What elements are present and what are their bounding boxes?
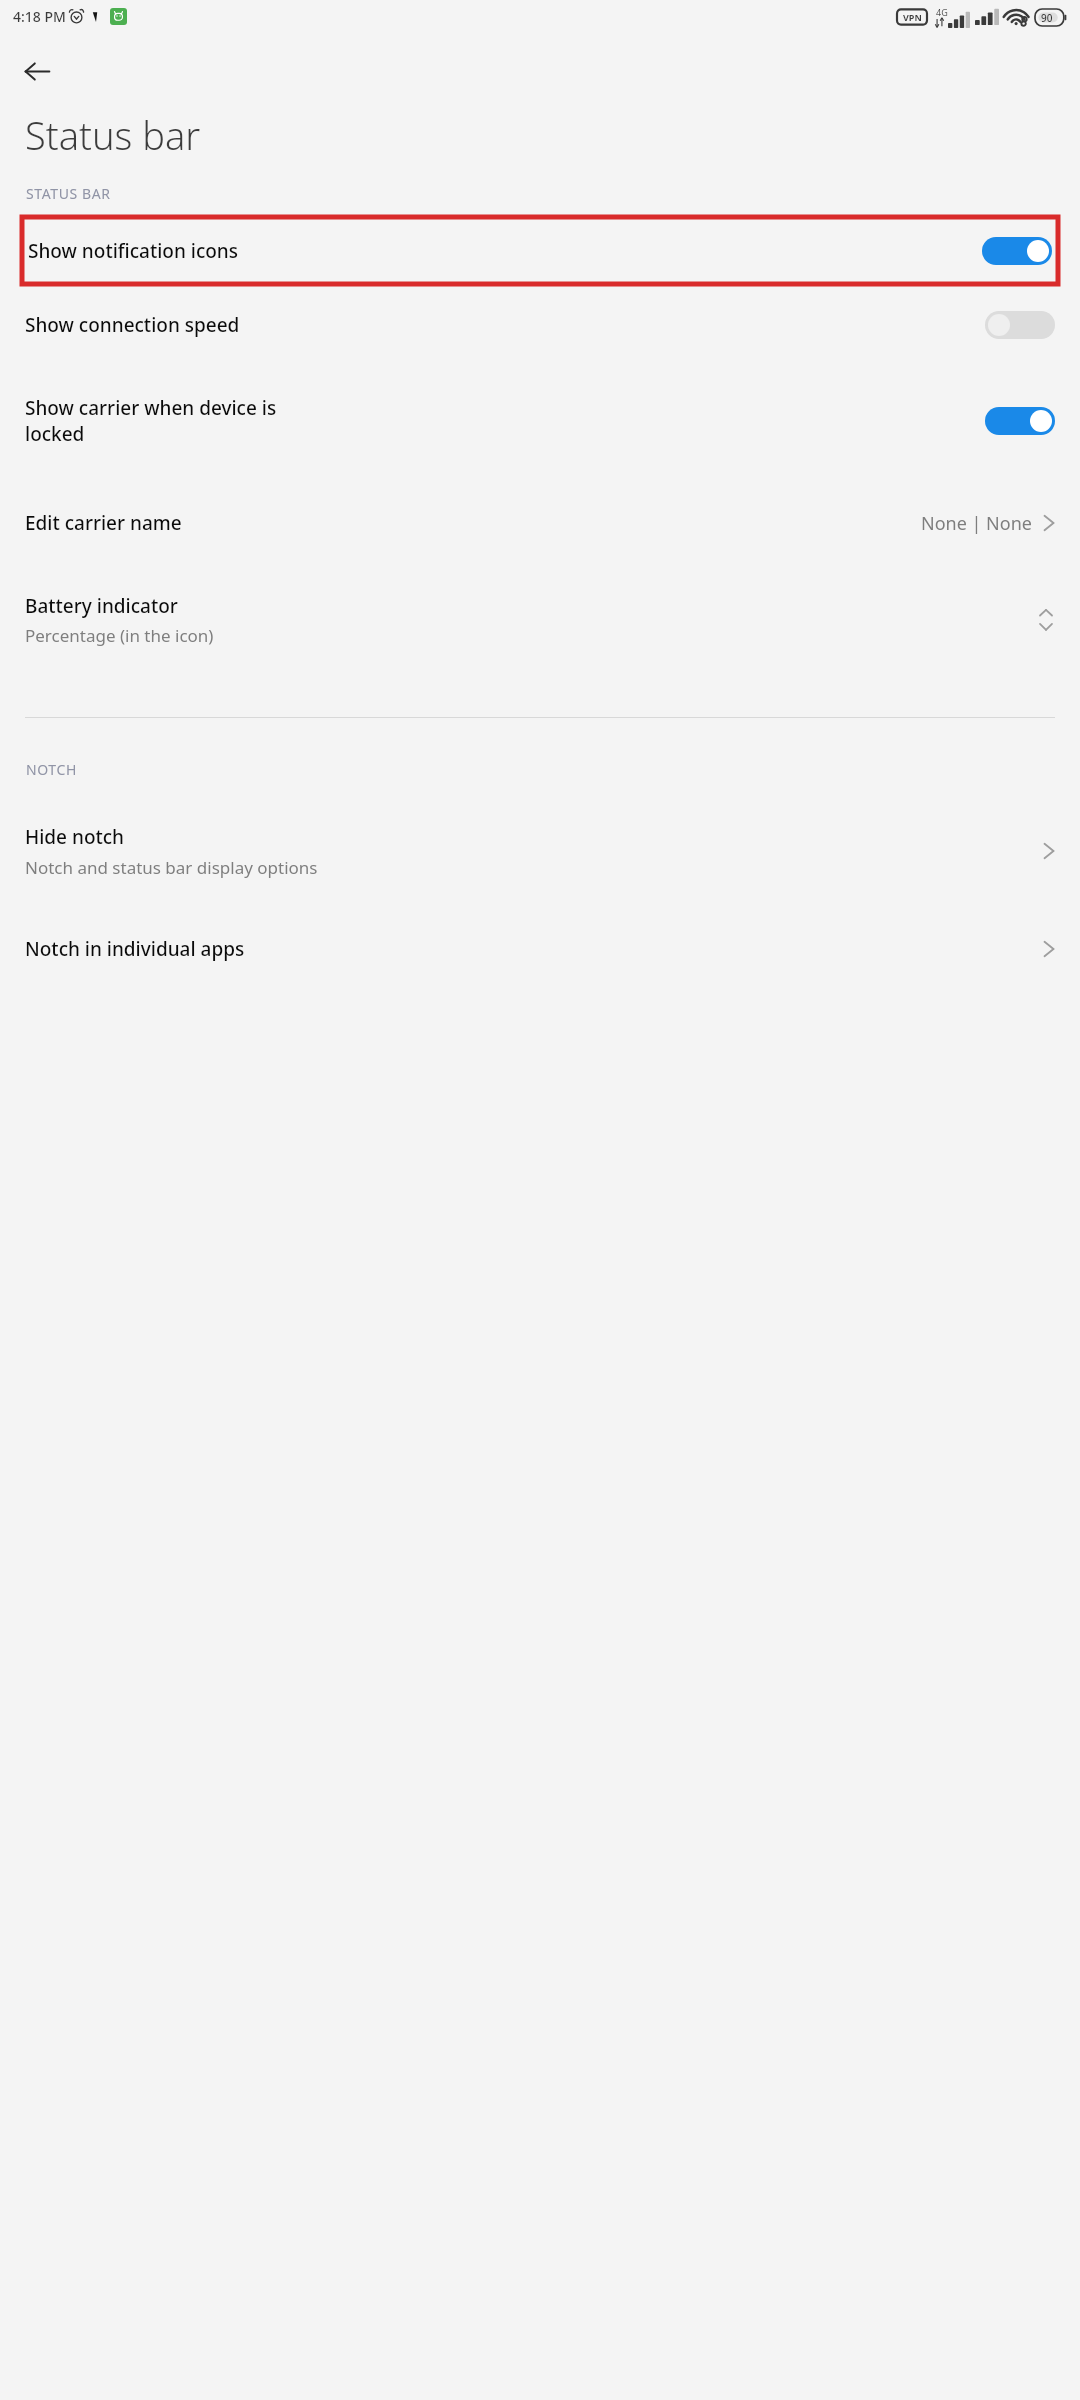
button[interactable]: Notch in individual apps <box>0 903 1080 995</box>
button[interactable]: Show carrier when device is locked <box>0 366 1080 476</box>
staticText: Show carrier when device is locked <box>25 395 971 447</box>
staticText: STATUS BAR <box>26 184 111 203</box>
staticText: VPN <box>903 11 922 23</box>
staticText: Show connection speed <box>25 312 971 338</box>
button[interactable]: Off <box>985 311 1055 339</box>
staticText: Status bar <box>25 109 201 161</box>
button[interactable]: Hide notch <box>0 799 1080 903</box>
button[interactable]: On <box>985 407 1055 435</box>
staticText: Percentage (in the icon) <box>25 624 214 647</box>
staticText: Notch in individual apps <box>25 936 1042 962</box>
staticText: 4G <box>936 6 948 18</box>
staticText: Battery indicator <box>25 593 178 619</box>
staticText: 4:18 PM <box>13 7 66 26</box>
staticText: Hide notch <box>25 824 125 850</box>
staticText: NOTCH <box>26 760 77 779</box>
other: Expand <box>1036 606 1056 634</box>
staticText: Notch and status bar display options <box>25 856 318 879</box>
staticText: Edit carrier name <box>25 510 921 536</box>
staticText: Show notification icons <box>28 238 982 264</box>
button[interactable]: Battery indicator <box>0 570 1080 670</box>
button[interactable]: Back <box>13 47 61 95</box>
button[interactable]: Show notification icons <box>22 217 1058 284</box>
button[interactable]: On <box>982 237 1052 265</box>
staticText: None | None <box>921 511 1032 536</box>
staticText: 90 <box>1041 11 1053 25</box>
button[interactable]: Edit carrier name <box>0 476 1080 570</box>
button[interactable]: Show connection speed <box>0 284 1080 366</box>
